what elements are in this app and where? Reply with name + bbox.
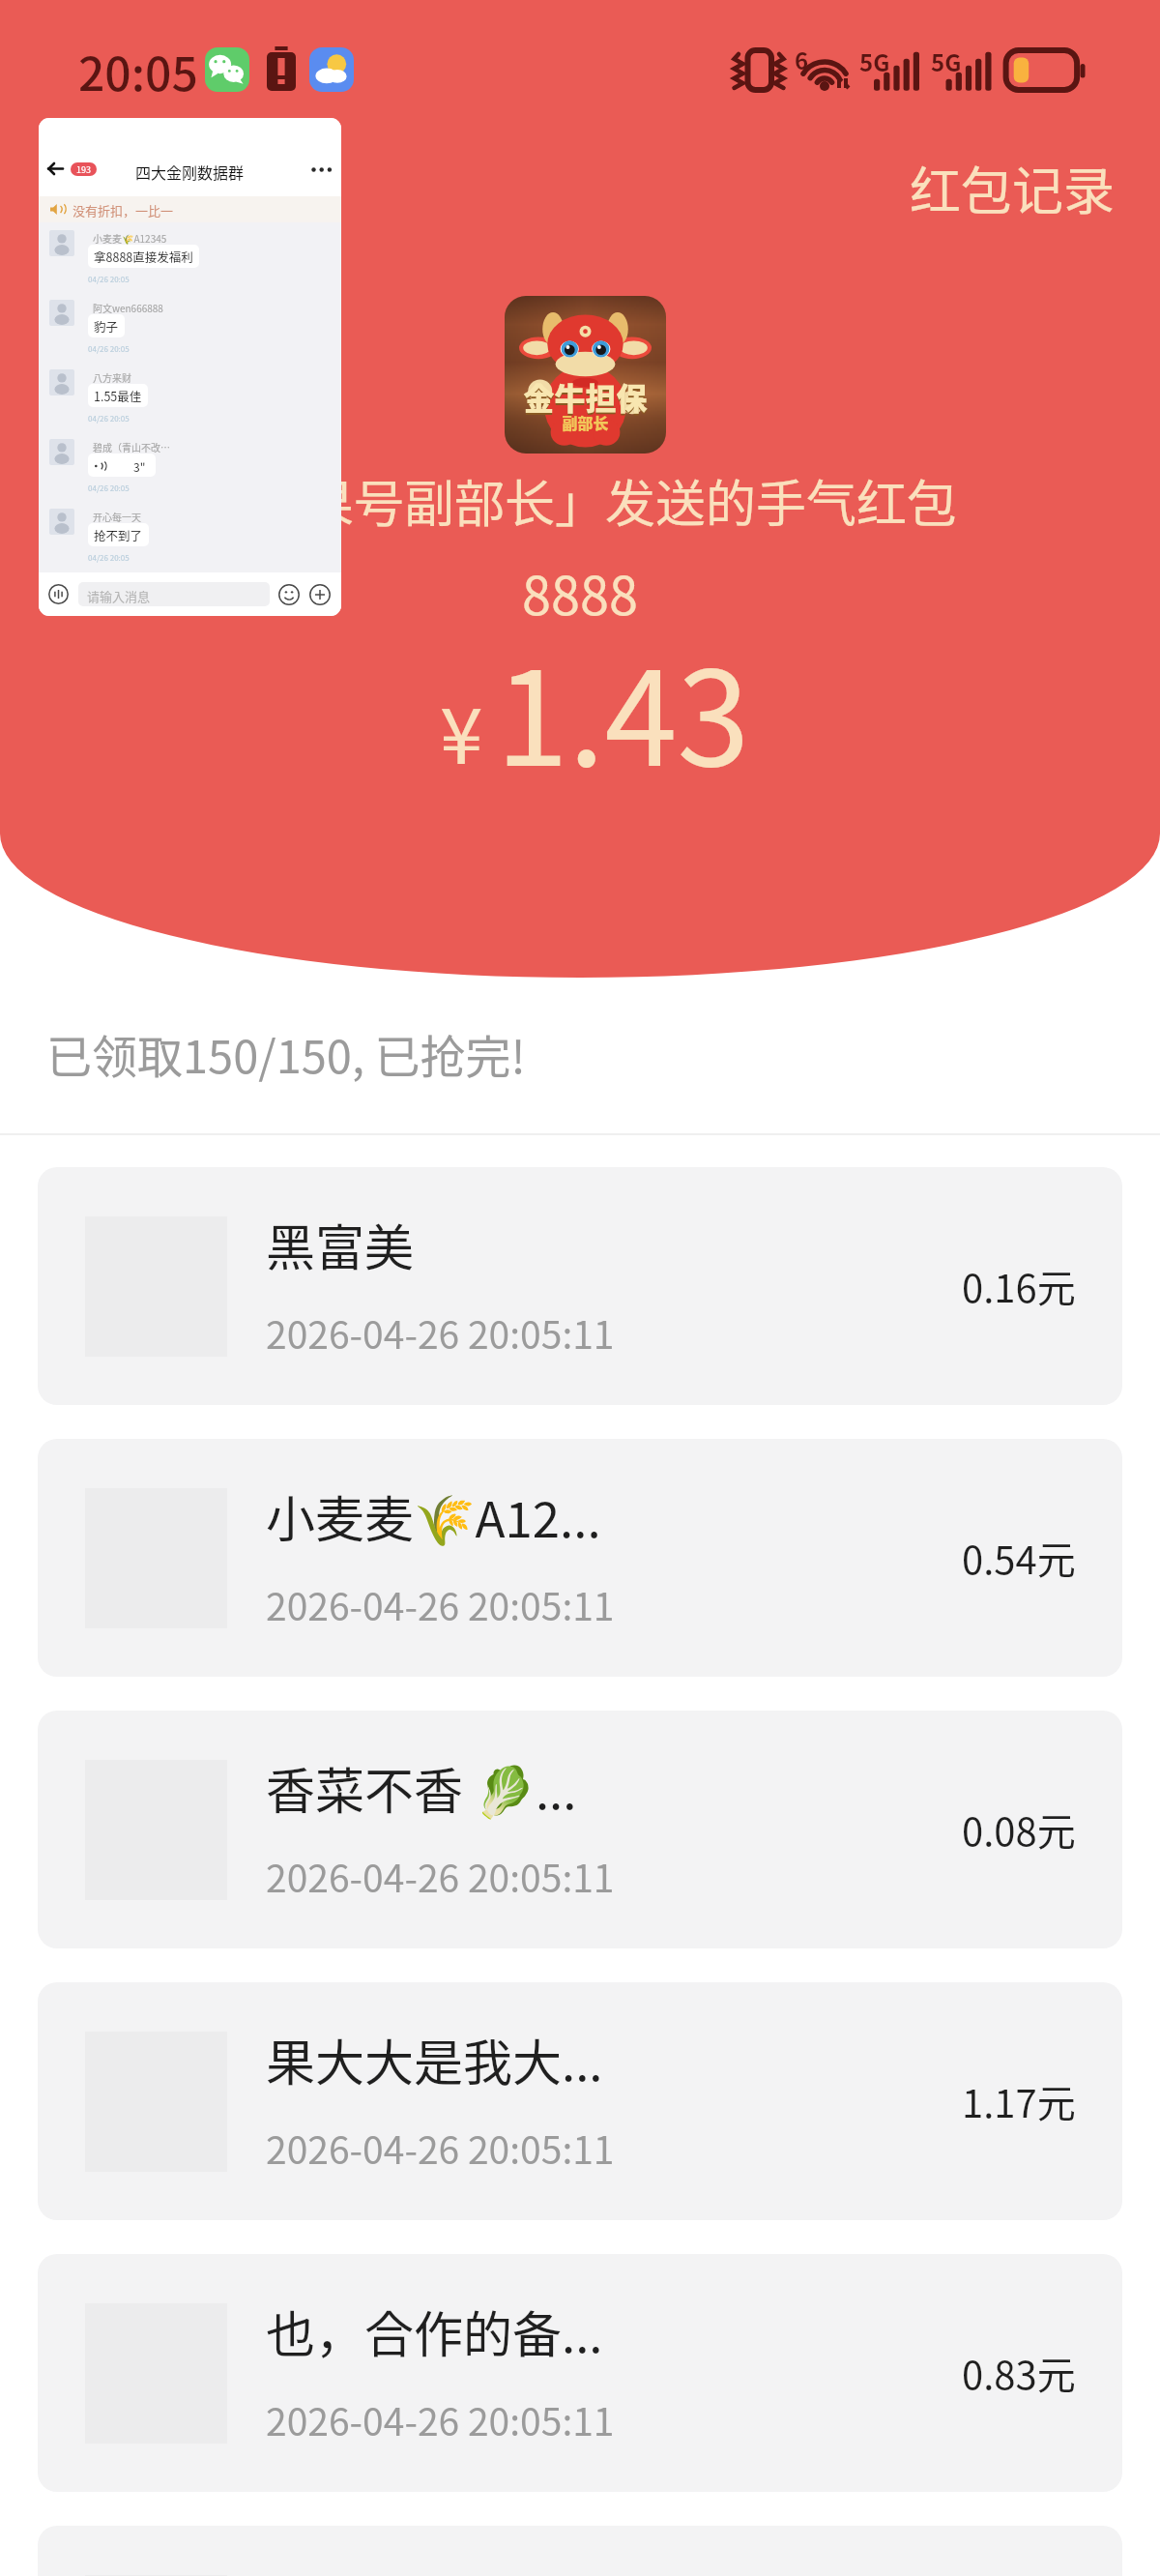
button[interactable]: 香菜不香 🥬... (38, 1711, 1122, 1948)
staticText: 04/26 20:05 (88, 413, 130, 424)
staticText: 1.43 (496, 614, 750, 803)
button[interactable]: More options (305, 159, 338, 182)
staticText: 1.55最佳 (94, 387, 142, 404)
staticText: 黑富美 (266, 1209, 415, 1280)
staticText: ¥ (440, 674, 483, 786)
staticText: 也，合作的备... (266, 2296, 603, 2367)
staticText: 5G (859, 44, 890, 78)
staticText: 2026-04-26 20:05:11 (266, 1577, 615, 1631)
button[interactable]: Emoji (278, 584, 300, 605)
staticText: 果大大是我大... (266, 2024, 603, 2095)
staticText: 拿8888直接发福利 (94, 248, 193, 265)
staticText: 2026-04-26 20:05:11 (266, 2392, 615, 2446)
button[interactable]: 黑富美 (38, 1167, 1122, 1405)
staticText: 04/26 20:05 (88, 483, 130, 494)
staticText: 5G (931, 44, 962, 78)
staticText: 已领取150/150, 已抢完! (46, 1020, 526, 1086)
staticText: 小麦麦🌾A12345 (93, 231, 167, 245)
staticText: 金牛担保 (505, 374, 666, 454)
button[interactable]: Voice message (48, 584, 69, 604)
staticText: 0.08元 (962, 1801, 1076, 1858)
staticText: 04/26 20:05 (88, 343, 130, 355)
button[interactable]: 果大大是我大... (38, 1982, 1122, 2220)
staticText: 开心每一天 (93, 510, 141, 523)
staticText: 20:05 (78, 37, 198, 104)
staticText: 8888 (0, 554, 1160, 629)
button[interactable]: Sender avatar (505, 296, 666, 454)
staticText: 193 (76, 163, 91, 176)
staticText: 红包记录 (910, 151, 1115, 225)
button[interactable]: 请输入消息 (78, 582, 270, 606)
staticText: 碧成（青山不改… (93, 440, 170, 454)
button[interactable]: Back (39, 118, 341, 616)
staticText: 请输入消息 (87, 587, 151, 605)
staticText: 副部长 (505, 411, 666, 454)
button[interactable]: Back (43, 157, 68, 181)
staticText: 1.17元 (962, 2073, 1076, 2129)
button[interactable]: 也，合作的备... (38, 2254, 1122, 2492)
staticText: 04/26 20:05 (88, 552, 130, 564)
staticText: 金牛担保 (505, 376, 666, 454)
button[interactable]: More (309, 584, 331, 605)
staticText: 0.16元 (962, 1258, 1076, 1314)
staticText: 2026-04-26 20:05:11 (266, 2121, 615, 2175)
staticText: 3" (133, 458, 146, 475)
staticText: 小麦麦🌾A12... (266, 1480, 601, 1552)
staticText: 2026-04-26 20:05:11 (266, 1849, 615, 1903)
staticText: 0.83元 (962, 2345, 1076, 2401)
staticText: 香菜不香 🥬... (266, 1752, 577, 1824)
staticText: 04/26 20:05 (88, 274, 130, 285)
staticText: 2026-04-26 20:05:11 (266, 1305, 615, 1360)
staticText: 豹子 (94, 317, 119, 335)
staticText: 没有折扣，一比一 (72, 201, 174, 220)
staticText: 「大果号副部长」发送的手气红包 (0, 464, 1160, 537)
button[interactable]: 红包记录 (910, 151, 1115, 225)
staticText: 八方来财 (93, 370, 131, 384)
staticText: 四大金刚数据群 (135, 161, 245, 183)
button[interactable]: 小麦麦🌾A12... (38, 1439, 1122, 1677)
staticText: 抢不到了 (94, 526, 143, 543)
staticText: 阿文wen666888 (93, 301, 163, 314)
staticText: 6 (795, 43, 809, 76)
staticText: 0.54元 (962, 1530, 1076, 1586)
